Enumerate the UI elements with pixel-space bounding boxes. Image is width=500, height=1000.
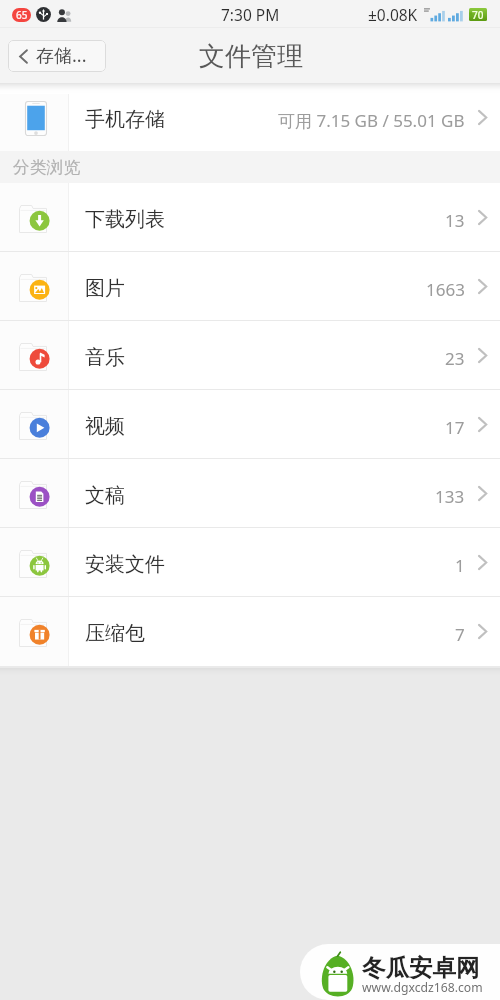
staticText: 分类浏览 [13, 157, 81, 178]
staticText: 23 [445, 347, 465, 370]
staticText: 视频 [85, 414, 125, 439]
staticText: 17 [445, 416, 465, 439]
other: USB [36, 7, 51, 22]
staticText: 1663 [426, 278, 465, 301]
staticText: 压缩包 [85, 621, 145, 646]
button[interactable]: 手机存储 [0, 83, 500, 151]
staticText: 13 [445, 209, 465, 232]
button[interactable]: 视频 [0, 390, 500, 459]
button[interactable]: 图片 [0, 252, 500, 321]
staticText: 70 [472, 8, 484, 21]
staticText: 图片 [85, 276, 125, 301]
staticText: 手机存储 [85, 107, 165, 132]
staticText: ±0.08K [368, 4, 418, 25]
staticText: 存储... [36, 43, 87, 68]
staticText: 7:30 PM [221, 4, 280, 25]
staticText: 文件管理 [199, 40, 303, 73]
button[interactable]: 下载列表 [0, 183, 500, 252]
staticText: 65 [16, 8, 28, 22]
staticText: 安装文件 [85, 552, 165, 577]
staticText: 冬瓜安卓网 [362, 953, 480, 983]
staticText: 文稿 [85, 483, 125, 508]
button[interactable]: 音乐 [0, 321, 500, 390]
button[interactable]: 存储... [8, 40, 106, 72]
staticText: www.dgxcdz168.com [362, 979, 483, 996]
other: Contacts [56, 8, 72, 22]
button[interactable]: 文稿 [0, 459, 500, 528]
button[interactable]: 安装文件 [0, 528, 500, 597]
staticText: 可用 7.15 GB / 55.01 GB [278, 109, 465, 132]
staticText: 音乐 [85, 345, 125, 370]
staticText: 下载列表 [85, 207, 165, 232]
staticText: 7 [455, 623, 465, 646]
staticText: 1 [455, 554, 465, 577]
button[interactable]: 压缩包 [0, 597, 500, 666]
staticText: 133 [435, 485, 465, 508]
